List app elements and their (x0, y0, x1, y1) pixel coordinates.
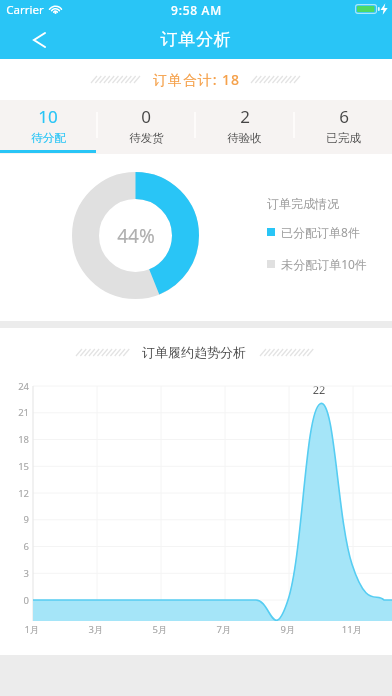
staticText: 已分配订单8件 (281, 224, 360, 240)
staticText: 18 (4, 433, 29, 446)
staticText: 9 (4, 513, 29, 526)
staticText: 7月 (208, 623, 240, 636)
staticText: 3月 (80, 623, 112, 636)
staticText: 已完成 (326, 131, 361, 145)
staticText: 10 (38, 105, 58, 128)
staticText: 0 (141, 105, 151, 128)
staticText: 2 (240, 105, 250, 128)
staticText: 12 (4, 487, 29, 500)
staticText: 0 (4, 594, 29, 607)
staticText: 1月 (16, 623, 48, 636)
staticText: 9:58 AM (171, 2, 222, 18)
button[interactable]: Back (0, 20, 78, 59)
staticText: 待分配 (31, 131, 66, 145)
staticText: 订单合计: 18 (153, 70, 240, 89)
staticText: 6 (4, 540, 29, 553)
staticText: 订单分析 (160, 29, 232, 50)
staticText: 24 (4, 380, 29, 393)
staticText: 9月 (272, 623, 304, 636)
staticText: 3 (4, 567, 29, 580)
button[interactable]: 10 (0, 100, 96, 154)
staticText: 22 (307, 382, 331, 397)
button[interactable]: 0 (98, 100, 194, 154)
staticText: 订单完成情况 (267, 196, 339, 211)
staticText: 11月 (336, 623, 368, 636)
button[interactable]: 2 (196, 100, 293, 154)
staticText: 15 (4, 460, 29, 473)
staticText: 订单履约趋势分析 (142, 344, 246, 360)
staticText: 待验收 (227, 131, 262, 145)
staticText: 6 (339, 105, 349, 128)
staticText: 44% (117, 223, 155, 249)
staticText: 21 (4, 406, 29, 419)
button[interactable]: 6 (295, 100, 392, 154)
staticText: 未分配订单10件 (281, 256, 367, 272)
staticText: Carrier (6, 2, 44, 18)
staticText: 5月 (144, 623, 176, 636)
staticText: 待发货 (129, 131, 164, 145)
